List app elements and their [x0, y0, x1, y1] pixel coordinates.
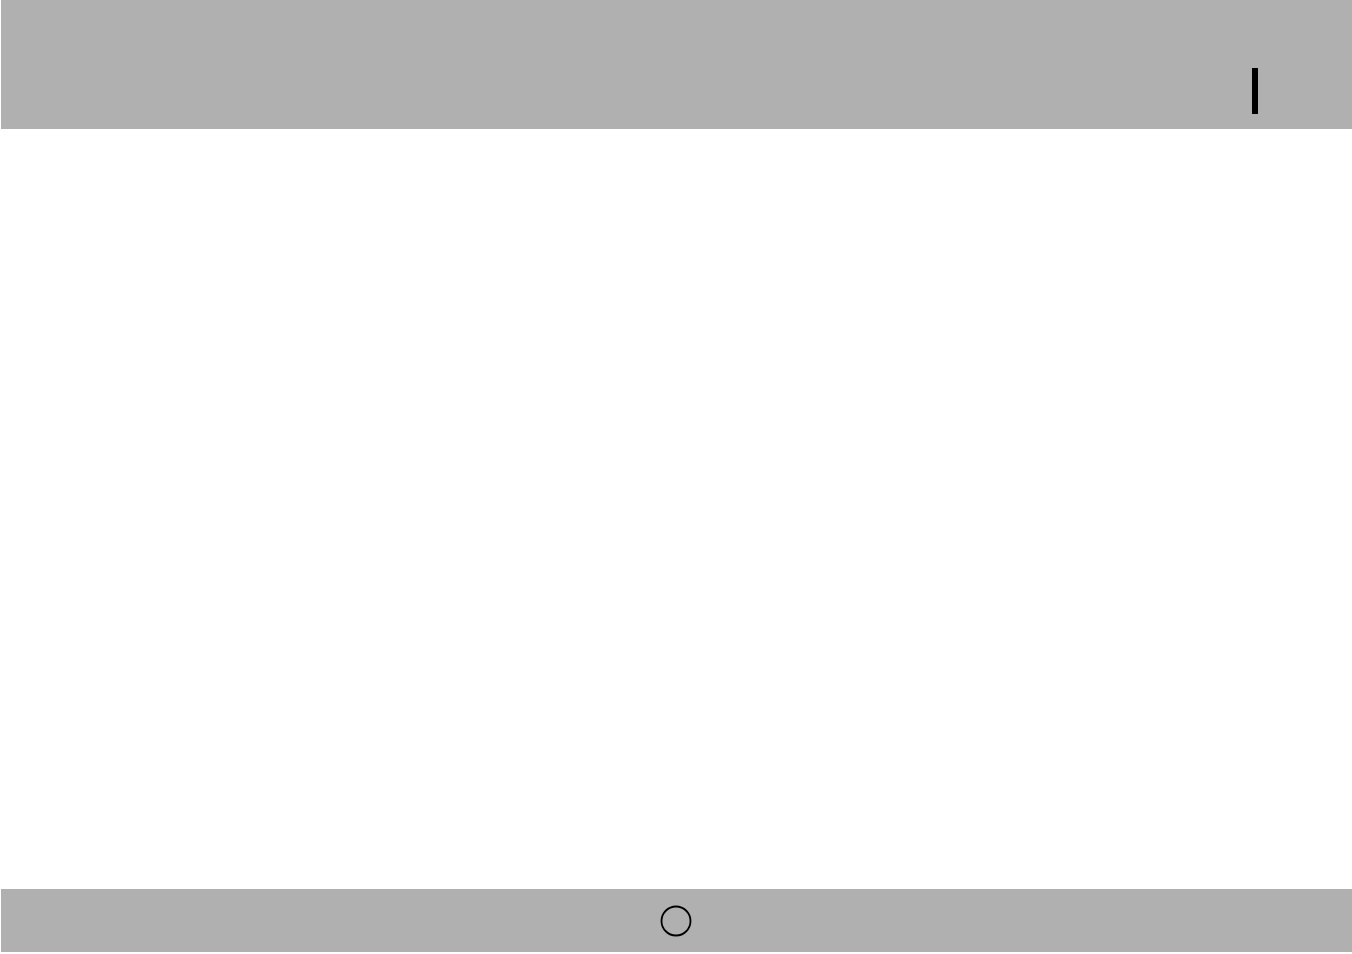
button[interactable]: Home [661, 906, 691, 936]
